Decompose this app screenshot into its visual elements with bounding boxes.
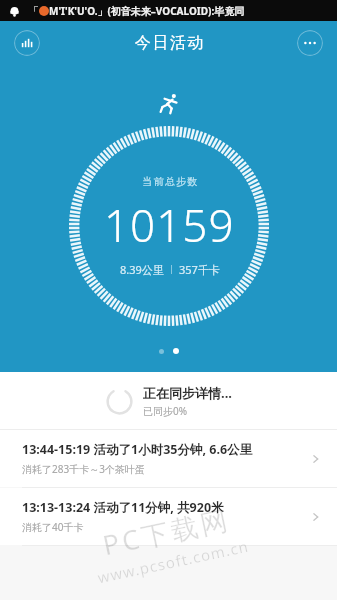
staticText: 消耗了283千卡～3个茶叶蛋 bbox=[22, 462, 145, 476]
staticText: 「 bbox=[28, 4, 39, 18]
staticText: 13:44-15:19 活动了1小时35分钟, 6.6公里 bbox=[22, 441, 253, 458]
staticText: 当前总步数 bbox=[142, 175, 198, 188]
staticText: 今日活动 bbox=[134, 33, 204, 53]
staticText: 8.39公里 bbox=[120, 262, 164, 277]
staticText: M'I'K'U'O.」(初音未来–VOCALOID):毕竟同 bbox=[49, 4, 245, 18]
staticText: 10159 bbox=[104, 195, 235, 255]
staticText: 已同步0% bbox=[143, 404, 188, 418]
button[interactable]: 13:13-13:24 活动了11分钟, 共920米 bbox=[0, 488, 337, 545]
staticText: 357千卡 bbox=[179, 262, 220, 277]
staticText: 13:13-13:24 活动了11分钟, 共920米 bbox=[22, 499, 224, 516]
button[interactable]: 正在同步详情... bbox=[0, 372, 337, 429]
button[interactable]: Statistics bbox=[14, 30, 40, 56]
staticText: www.pcsoft.com.cn bbox=[96, 536, 250, 587]
staticText: 正在同步详情... bbox=[143, 384, 232, 402]
staticText: 消耗了40千卡 bbox=[22, 520, 84, 534]
button[interactable]: More options bbox=[297, 30, 323, 56]
button[interactable]: 13:44-15:19 活动了1小时35分钟, 6.6公里 bbox=[0, 430, 337, 487]
staticText: PC下载网 bbox=[99, 500, 234, 563]
